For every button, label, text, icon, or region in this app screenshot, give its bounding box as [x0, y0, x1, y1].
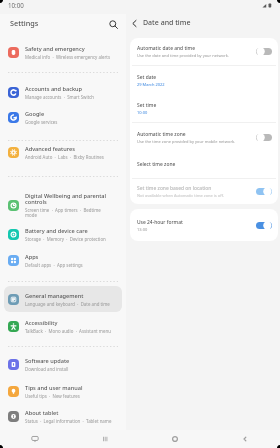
staticText: Apps	[25, 253, 39, 261]
staticText: 10:00	[8, 1, 24, 9]
staticText: Automatic date and time	[137, 45, 196, 52]
staticText: Set time zone based on location	[137, 185, 212, 192]
button[interactable]: Set time	[130, 94, 278, 122]
staticText: 29 March 2022	[137, 82, 165, 87]
staticText: Screen time · App timers · Bedtime mode	[25, 207, 101, 219]
staticText: Battery and device care	[25, 227, 88, 235]
button[interactable]: Automatic time zone	[130, 123, 278, 151]
button[interactable]: Advanced features	[0, 139, 126, 165]
staticText: Settings	[10, 18, 39, 28]
button[interactable]: Back	[210, 430, 280, 448]
button[interactable]: Accessibility	[0, 313, 126, 339]
button[interactable]: Digital Wellbeing and parental controls	[0, 186, 126, 224]
staticText: Set date	[137, 74, 157, 81]
button[interactable]: Select time zone	[130, 151, 278, 178]
button[interactable]: Home	[140, 430, 210, 448]
staticText: Medical info · Wireless emergency alerts	[25, 54, 111, 60]
button[interactable]: Battery and device care	[0, 221, 126, 247]
staticText: Google	[25, 110, 45, 118]
button[interactable]: Toggle off	[256, 133, 272, 142]
staticText: About tablet	[25, 409, 59, 417]
staticText: Software update	[25, 357, 70, 365]
button[interactable]: Use 24-hour format	[130, 209, 278, 241]
staticText: Use 24-hour format	[137, 219, 183, 226]
button[interactable]: Set time zone based on location	[130, 179, 278, 204]
staticText: TalkBack · Mono audio · Assistant menu	[25, 328, 111, 334]
staticText: Not available when Automatic time zone i…	[137, 193, 224, 198]
button[interactable]: Google	[0, 104, 126, 130]
staticText: Set time	[137, 102, 157, 109]
staticText: Tips and user manual	[25, 384, 83, 392]
button[interactable]: Hide keyboard	[0, 430, 70, 448]
button[interactable]: Tips and user manual	[0, 378, 126, 404]
button[interactable]: Toggle on	[256, 221, 272, 230]
staticText: 13:00	[137, 227, 148, 232]
staticText: Select time zone	[137, 161, 176, 168]
button[interactable]: Automatic date and time	[130, 38, 278, 65]
staticText: Download and install	[25, 366, 69, 372]
staticText: Google services	[25, 119, 58, 125]
staticText: Automatic time zone	[137, 131, 186, 138]
button[interactable]: Search	[104, 15, 122, 33]
button[interactable]: Safety and emergency	[0, 39, 126, 65]
staticText: Safety and emergency	[25, 45, 85, 53]
staticText: Accessibility	[25, 319, 58, 327]
staticText: Accounts and backup	[25, 85, 83, 93]
button[interactable]: Toggle on	[256, 187, 272, 196]
staticText: Manage accounts · Smart Switch	[25, 94, 95, 100]
staticText: Status · Legal information · Tablet name	[25, 418, 112, 424]
staticText: Advanced features	[25, 145, 75, 153]
button[interactable]: Software update	[0, 351, 126, 377]
staticText: Storage · Memory · Device protection	[25, 236, 106, 242]
button[interactable]: Accounts and backup	[0, 79, 126, 105]
staticText: Useful tips · New features	[25, 393, 80, 399]
button[interactable]: About tablet	[0, 403, 126, 429]
staticText: Default apps · App settings	[25, 262, 83, 268]
staticText: Digital Wellbeing and parental controls	[25, 192, 107, 206]
staticText: General management	[25, 292, 84, 300]
button[interactable]: Recent apps	[70, 430, 140, 448]
staticText: Android Auto · Labs · Bixby Routines	[25, 154, 104, 160]
staticText: Use the time zone provided by your mobil…	[137, 139, 236, 144]
staticText: Language and keyboard · Date and time	[25, 301, 110, 307]
button[interactable]: Toggle off	[256, 47, 272, 56]
staticText: Date and time	[143, 18, 191, 28]
button[interactable]: Back	[126, 15, 142, 31]
staticText: Use the date and time provided by your n…	[137, 53, 229, 58]
button[interactable]: Set date	[130, 66, 278, 94]
staticText: 10:00	[137, 110, 148, 115]
button[interactable]: Apps	[0, 247, 126, 273]
button[interactable]: General management	[0, 286, 126, 312]
